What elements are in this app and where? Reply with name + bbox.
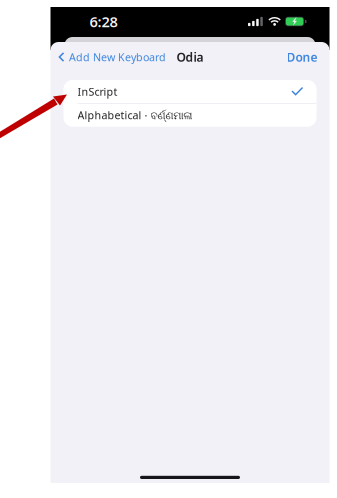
button[interactable]: InScript: [63, 80, 316, 103]
button[interactable]: Alphabetical · ବର୍ଣ୍ଣମାଳା: [63, 104, 316, 127]
staticText: Odia: [176, 49, 203, 65]
button[interactable]: Done: [276, 45, 329, 69]
staticText: Done: [286, 49, 317, 65]
staticText: InScript: [77, 84, 117, 99]
staticText: 6:28: [89, 12, 117, 31]
staticText: Add New Keyboard: [69, 50, 166, 64]
staticText: Alphabetical · ବର୍ଣ୍ଣମାଳା: [77, 108, 192, 122]
button[interactable]: Add New Keyboard: [50, 45, 172, 69]
